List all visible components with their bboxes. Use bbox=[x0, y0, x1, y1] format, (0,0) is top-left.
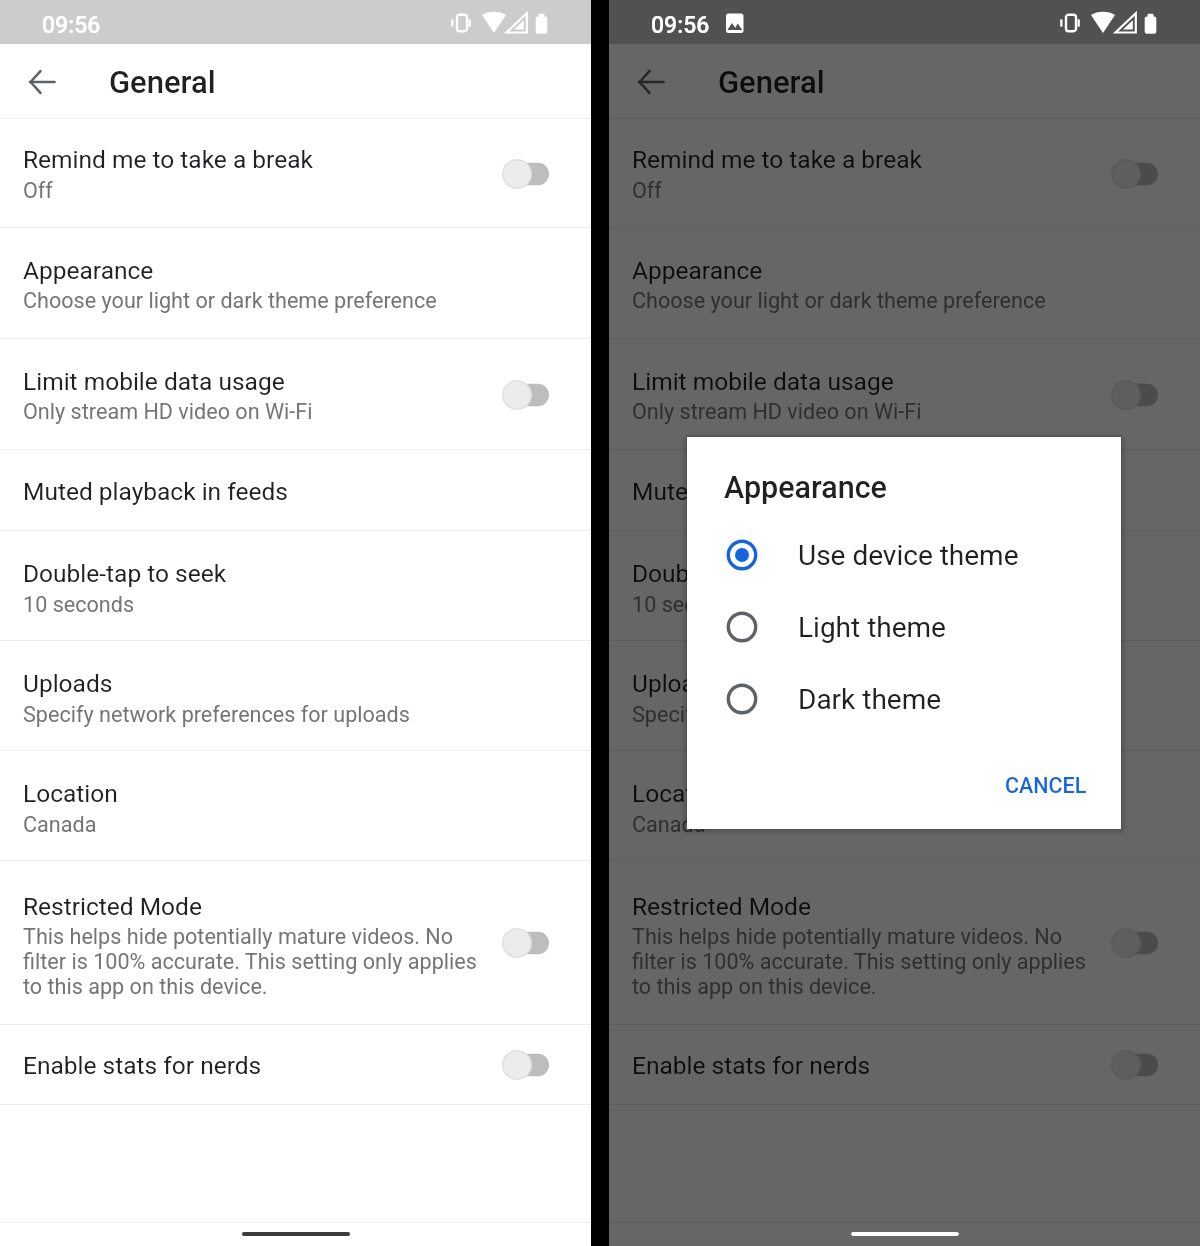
staticText: Remind me to take a break bbox=[23, 145, 313, 174]
button[interactable]: Uploads bbox=[0, 641, 591, 751]
staticText: Remind me to take a break bbox=[632, 145, 922, 174]
button[interactable]: Enable stats for nerds bbox=[609, 1025, 1200, 1105]
staticText: Light theme bbox=[798, 611, 946, 644]
button[interactable]: Toggle bbox=[1110, 373, 1176, 417]
button[interactable]: Toggle bbox=[1110, 152, 1176, 196]
button[interactable]: Remind me to take a break bbox=[0, 119, 591, 228]
staticText: Appearance bbox=[23, 256, 154, 285]
staticText: Muted playback in feeds bbox=[632, 477, 897, 506]
staticText: Canada bbox=[632, 812, 706, 837]
button[interactable]: Back bbox=[627, 58, 675, 106]
staticText: to this app on this device. bbox=[23, 974, 268, 999]
staticText: Limit mobile data usage bbox=[23, 367, 285, 396]
staticText: Choose your light or dark theme preferen… bbox=[23, 288, 437, 313]
button[interactable]: Location bbox=[0, 751, 591, 861]
staticText: Uploads bbox=[632, 669, 722, 698]
staticText: Dark theme bbox=[798, 683, 942, 716]
button[interactable]: Enable stats for nerds bbox=[0, 1025, 591, 1105]
staticText: Location bbox=[23, 779, 118, 808]
button[interactable]: Muted playback in feeds bbox=[609, 450, 1200, 531]
staticText: Muted playback in feeds bbox=[23, 477, 288, 506]
button[interactable]: Limit mobile data usage bbox=[0, 339, 591, 450]
button[interactable]: Toggle bbox=[1110, 1043, 1176, 1087]
staticText: Only stream HD video on Wi-Fi bbox=[23, 399, 313, 424]
staticText: This helps hide potentially mature video… bbox=[632, 924, 1063, 949]
staticText: filter is 100% accurate. This setting on… bbox=[23, 949, 477, 974]
staticText: Enable stats for nerds bbox=[23, 1051, 262, 1080]
staticText: Only stream HD video on Wi-Fi bbox=[632, 399, 922, 424]
button[interactable]: Dark theme bbox=[687, 668, 1121, 730]
staticText: Appearance bbox=[632, 256, 763, 285]
staticText: Double-tap to seek bbox=[632, 559, 836, 588]
staticText: General bbox=[718, 64, 825, 100]
button[interactable]: Remind me to take a break bbox=[609, 119, 1200, 228]
button[interactable]: Location bbox=[609, 751, 1200, 861]
staticText: Appearance bbox=[724, 470, 887, 506]
button[interactable]: Restricted Mode bbox=[609, 861, 1200, 1025]
staticText: filter is 100% accurate. This setting on… bbox=[632, 949, 1086, 974]
staticText: Choose your light or dark theme preferen… bbox=[632, 288, 1046, 313]
button[interactable]: Limit mobile data usage bbox=[609, 339, 1200, 450]
staticText: CANCEL bbox=[1005, 773, 1087, 798]
staticText: Restricted Mode bbox=[23, 892, 202, 921]
staticText: Specify network preferences for uploads bbox=[23, 702, 410, 727]
button[interactable]: Restricted Mode bbox=[0, 861, 591, 1025]
button[interactable]: Appearance bbox=[609, 228, 1200, 339]
staticText: Off bbox=[632, 178, 662, 203]
button[interactable]: Toggle bbox=[1110, 921, 1176, 965]
button[interactable]: Appearance bbox=[0, 228, 591, 339]
staticText: Location bbox=[632, 779, 727, 808]
button[interactable]: Use device theme bbox=[687, 524, 1121, 586]
button[interactable]: Toggle bbox=[501, 1043, 567, 1087]
button[interactable]: Dismiss dialog bbox=[609, 0, 1200, 1246]
staticText: 10 seconds bbox=[23, 592, 135, 617]
staticText: Off bbox=[23, 178, 53, 203]
staticText: Canada bbox=[23, 812, 97, 837]
staticText: This helps hide potentially mature video… bbox=[23, 924, 454, 949]
button[interactable]: Double-tap to seek bbox=[609, 531, 1200, 641]
button[interactable]: Toggle bbox=[501, 152, 567, 196]
staticText: 10 seconds bbox=[632, 592, 744, 617]
button[interactable]: Double-tap to seek bbox=[0, 531, 591, 641]
staticText: General bbox=[109, 64, 216, 100]
staticText: Restricted Mode bbox=[632, 892, 811, 921]
staticText: 09:56 bbox=[42, 12, 101, 39]
staticText: Uploads bbox=[23, 669, 113, 698]
staticText: Double-tap to seek bbox=[23, 559, 227, 588]
staticText: to this app on this device. bbox=[632, 974, 877, 999]
staticText: Enable stats for nerds bbox=[632, 1051, 871, 1080]
button[interactable]: Muted playback in feeds bbox=[0, 450, 591, 531]
button[interactable]: Back bbox=[18, 58, 66, 106]
button[interactable]: CANCEL bbox=[993, 763, 1099, 808]
staticText: Limit mobile data usage bbox=[632, 367, 894, 396]
staticText: 09:56 bbox=[651, 12, 710, 39]
button[interactable]: Uploads bbox=[609, 641, 1200, 751]
button[interactable]: Light theme bbox=[687, 596, 1121, 658]
button[interactable]: Toggle bbox=[501, 921, 567, 965]
staticText: Use device theme bbox=[798, 539, 1019, 572]
staticText: Specify network preferences for uploads bbox=[632, 702, 1019, 727]
button[interactable]: Toggle bbox=[501, 373, 567, 417]
